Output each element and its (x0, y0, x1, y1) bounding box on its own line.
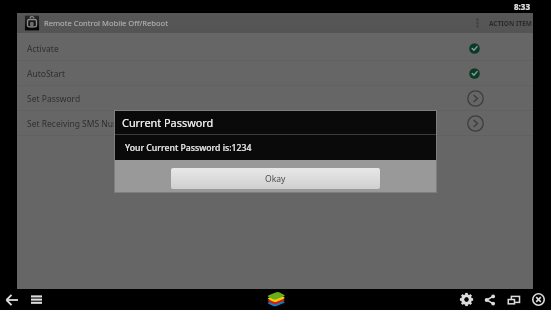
button[interactable]: Activate (17, 36, 533, 61)
button[interactable]: Share (478, 289, 502, 310)
button[interactable]: Okay (171, 168, 380, 189)
staticText: Set Password (27, 93, 81, 105)
button[interactable]: More options (467, 13, 481, 33)
staticText: AutoStart (27, 68, 65, 80)
button[interactable]: Set Password (17, 86, 533, 111)
button[interactable]: Settings (454, 289, 478, 310)
button[interactable]: Menu (24, 289, 48, 310)
button[interactable]: Restore window (502, 289, 526, 310)
staticText: Okay (265, 173, 286, 185)
staticText: Activate (27, 43, 59, 55)
button[interactable]: AutoStart (17, 61, 533, 86)
button[interactable]: Close (526, 289, 550, 310)
staticText: ACTION ITEM (489, 19, 532, 28)
button[interactable]: Home (266, 291, 286, 308)
staticText: Set Receiving SMS Number (27, 118, 135, 130)
staticText: Your Current Password is:1234 (125, 142, 252, 154)
button[interactable]: Back (0, 289, 24, 310)
staticText: 8:33 (514, 1, 530, 12)
button[interactable]: ACTION ITEM (481, 13, 533, 33)
staticText: Current Password (122, 115, 214, 130)
staticText: Remote Control Mobile Off/Reboot (44, 18, 168, 28)
button[interactable]: Set Receiving SMS Number (17, 111, 533, 136)
